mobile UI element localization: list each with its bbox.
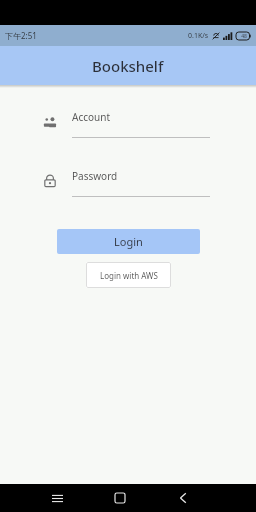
staticText: 48 — [241, 33, 247, 40]
button[interactable]: Recents — [44, 485, 70, 511]
staticText: Bookshelf — [92, 56, 164, 76]
button[interactable]: Home — [107, 485, 133, 511]
button[interactable]: Account — [40, 110, 210, 138]
staticText: 下午2:51 — [5, 30, 37, 41]
staticText: Password — [72, 169, 118, 183]
button[interactable]: Login — [57, 229, 200, 254]
staticText: Login with AWS — [100, 270, 158, 281]
staticText: Account — [72, 110, 111, 124]
staticText: Login — [114, 234, 143, 249]
button[interactable]: Password — [40, 169, 210, 197]
button[interactable]: Back — [170, 485, 196, 511]
button[interactable]: Login with AWS — [86, 262, 171, 288]
staticText: 0.1K/s — [188, 31, 209, 41]
